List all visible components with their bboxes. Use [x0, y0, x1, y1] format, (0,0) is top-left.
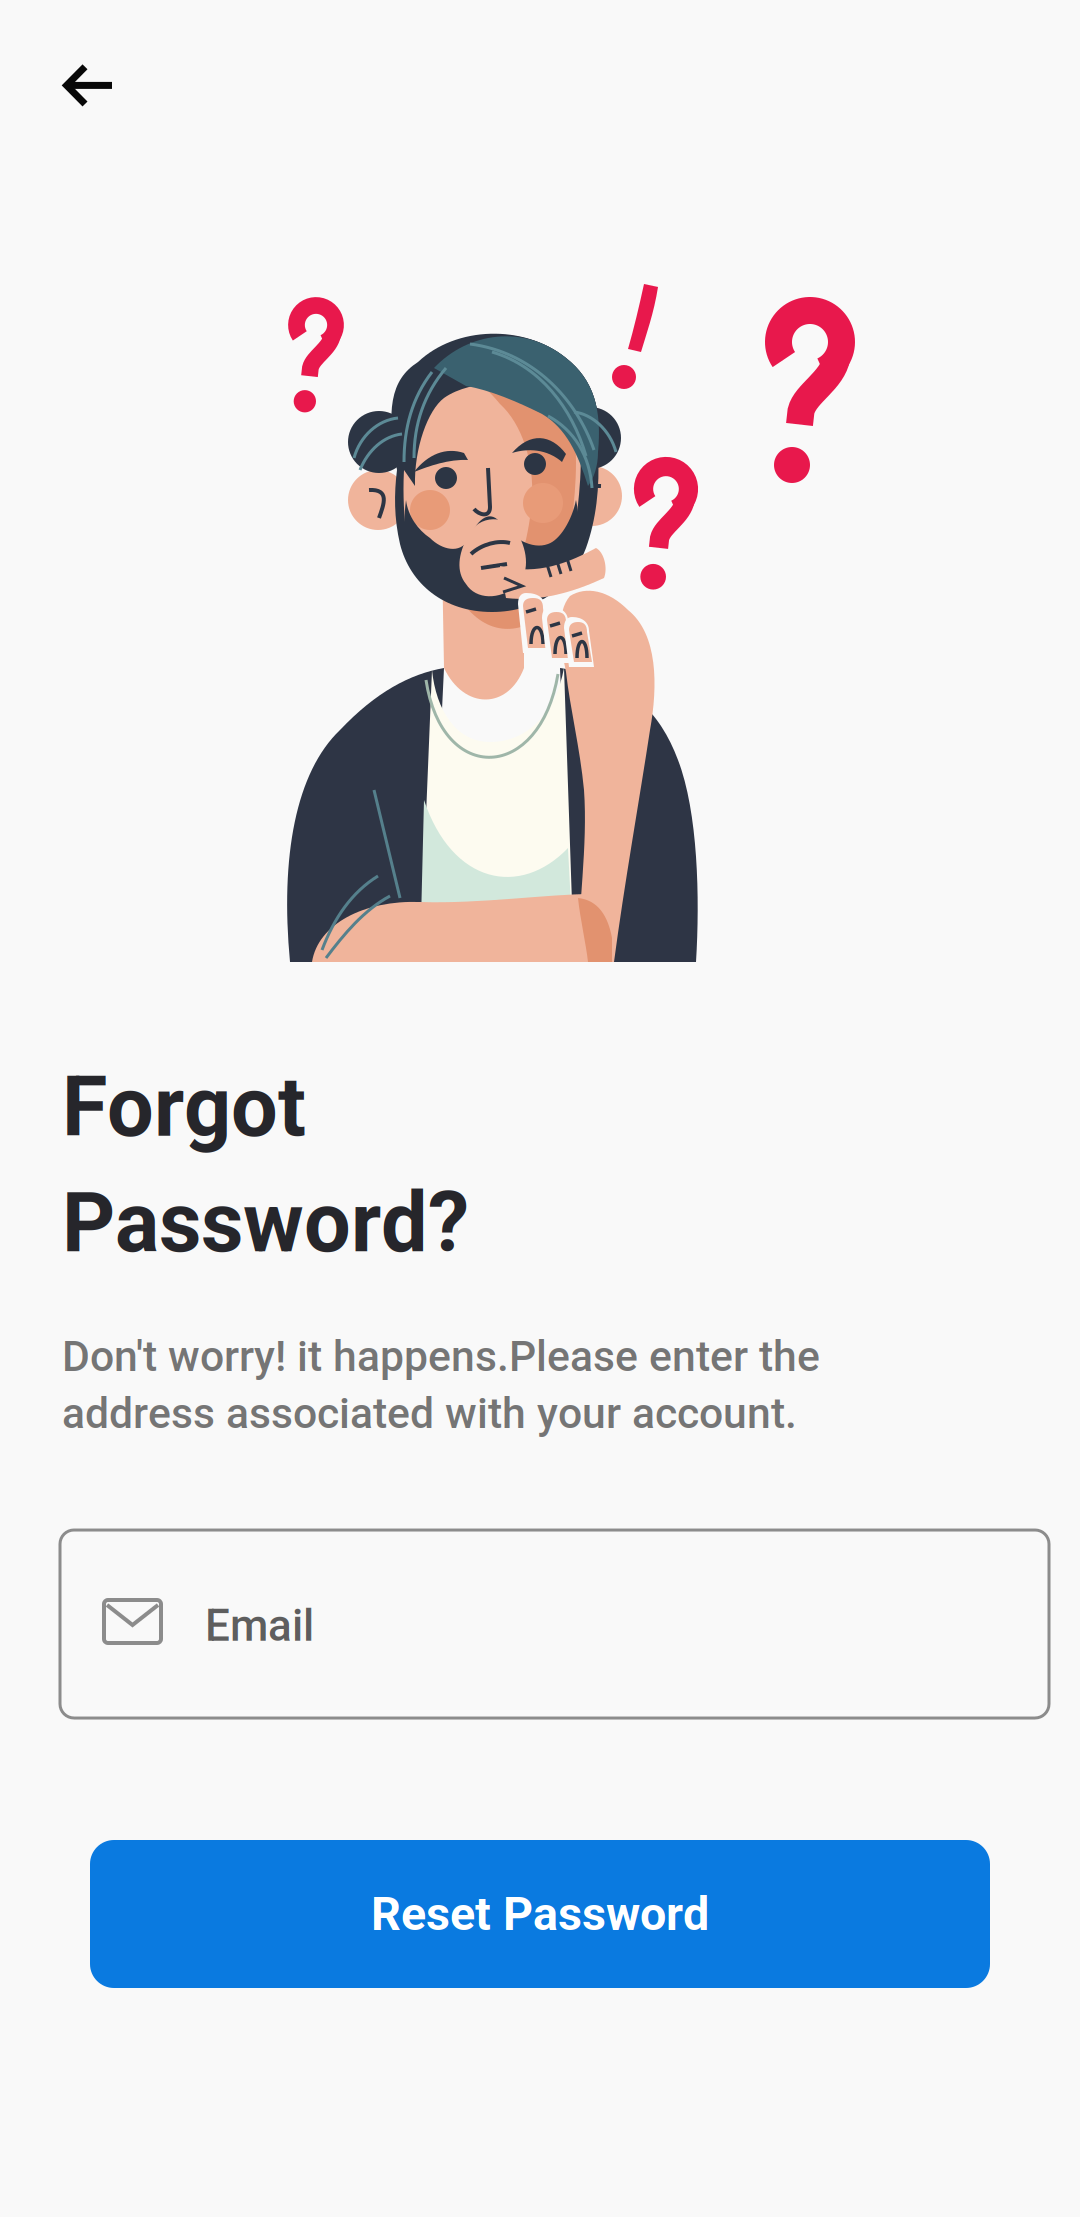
staticText: address associated with your account. — [62, 1388, 797, 1438]
staticText: Don't worry! it happens.Please enter the — [62, 1331, 820, 1381]
button[interactable]: Reset Password — [90, 1840, 990, 1988]
staticText: Forgot — [62, 1059, 306, 1156]
staticText: Email — [205, 1600, 314, 1652]
staticText: Reset Password — [371, 1887, 709, 1941]
button[interactable]: Back — [0, 0, 170, 160]
staticText: Password? — [62, 1175, 469, 1271]
button[interactable]: Email — [60, 1530, 1049, 1718]
